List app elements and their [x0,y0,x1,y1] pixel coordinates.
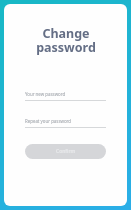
staticText: Your new password [25,91,66,97]
staticText: Change password [36,25,96,56]
button[interactable]: Repeat your password [25,118,106,128]
staticText: Repeat your password [25,118,72,124]
staticText: Confirm [56,148,76,155]
button[interactable]: Your new password [25,91,106,101]
button[interactable]: Confirm [25,144,106,159]
